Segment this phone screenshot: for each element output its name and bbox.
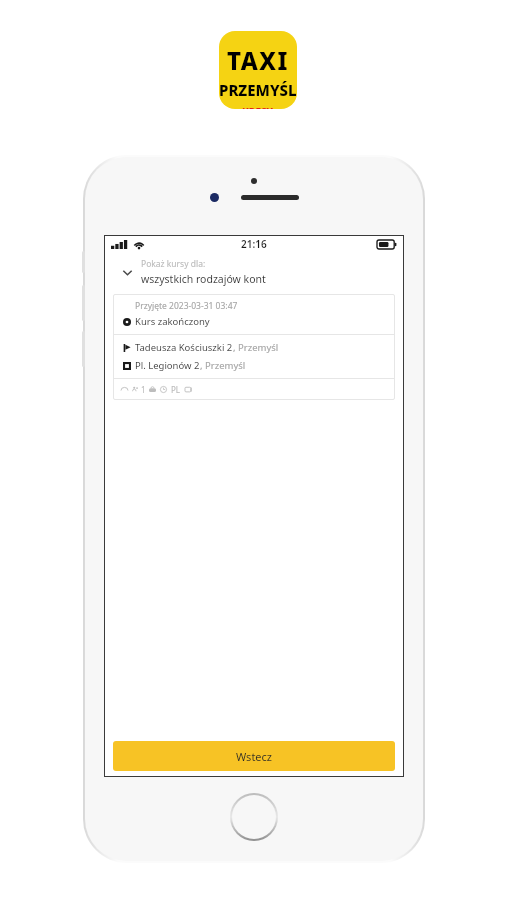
staticText: TAXI xyxy=(227,44,289,77)
staticText: Przyjęte 2023-03-31 03:47 xyxy=(135,300,238,312)
button[interactable]: TAXI xyxy=(219,31,297,109)
staticText: , Przemyśl xyxy=(233,341,279,354)
staticText: , Przemyśl xyxy=(200,359,246,372)
staticText: Wstecz xyxy=(236,749,273,764)
staticText: wszystkich rodzajów kont xyxy=(141,272,266,286)
button[interactable]: Wstecz xyxy=(113,741,395,771)
staticText: Tadeusza Kościuszki 2 xyxy=(135,341,233,354)
staticText: Pl. Legionów 2 xyxy=(135,359,200,372)
staticText: KRESY xyxy=(242,105,274,109)
button[interactable]: Home button xyxy=(230,793,278,841)
staticText: PL xyxy=(171,384,181,395)
button[interactable]: Pokaż kursy dla: xyxy=(113,258,395,286)
staticText: Pokaż kursy dla: xyxy=(141,258,206,270)
staticText: 1 xyxy=(141,384,146,395)
staticText: Kurs zakończony xyxy=(135,315,210,328)
button[interactable]: Przyjęte 2023-03-31 03:47 xyxy=(113,294,395,400)
staticText: 21:16 xyxy=(241,237,267,251)
staticText: PRZEMYŚL xyxy=(219,80,297,100)
